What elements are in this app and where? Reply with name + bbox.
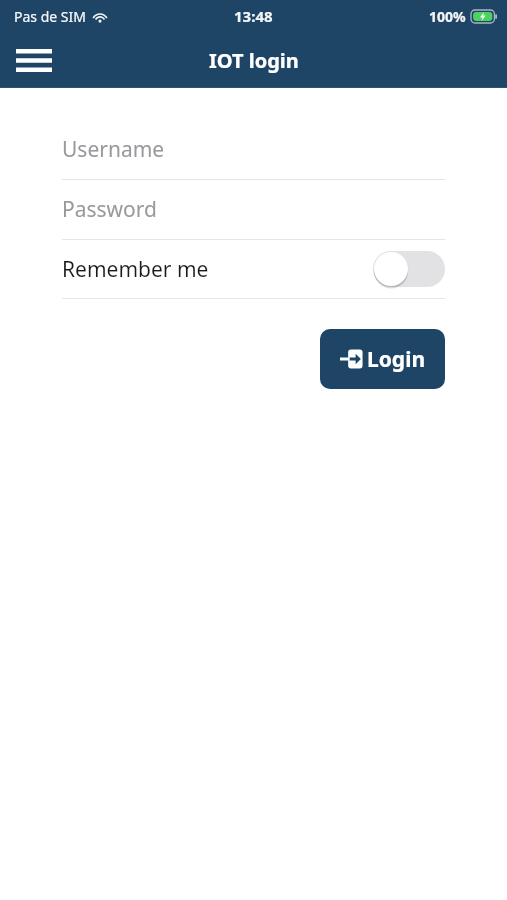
staticText: Remember me <box>62 255 209 284</box>
button[interactable]: Password <box>62 180 445 239</box>
staticText: IOT login <box>209 47 299 74</box>
button[interactable]: Login <box>320 329 445 389</box>
button[interactable]: Username <box>62 120 445 179</box>
button[interactable]: Remember me <box>62 240 445 298</box>
button[interactable]: Menu <box>8 34 60 86</box>
staticText: 13:48 <box>234 6 273 26</box>
staticText: Password <box>62 195 157 224</box>
staticText: Username <box>62 135 165 164</box>
button[interactable]: Remember me toggle <box>373 251 445 287</box>
staticText: 100% <box>429 7 466 26</box>
staticText: Pas de SIM <box>14 7 86 26</box>
staticText: Login <box>367 345 426 374</box>
